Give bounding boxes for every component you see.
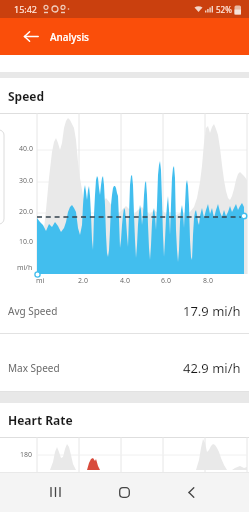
staticText: Speed <box>8 88 45 104</box>
staticText: 10.0 <box>19 237 33 247</box>
staticText: 17.9 mi/h <box>183 302 241 320</box>
staticText: mi <box>36 276 45 286</box>
staticText: 2.0 <box>78 276 88 286</box>
staticText: 8.0 <box>203 276 213 286</box>
staticText: 6.0 <box>161 276 171 286</box>
staticText: Avg Speed <box>8 304 58 318</box>
staticText: Max Speed <box>8 361 60 375</box>
button[interactable]: Max Speed <box>0 334 249 391</box>
staticText: Heart Rate <box>8 412 73 428</box>
button[interactable]: Avg Speed <box>0 288 249 333</box>
staticText: 15:42 <box>14 3 38 15</box>
staticText: 20.0 <box>19 207 33 217</box>
button[interactable] <box>167 472 215 512</box>
staticText: mi/h <box>17 263 33 273</box>
staticText: 30.0 <box>19 176 33 186</box>
staticText: Analysis <box>50 30 89 44</box>
staticText: 180 <box>20 450 33 460</box>
button[interactable] <box>15 18 47 55</box>
button[interactable] <box>100 472 148 512</box>
button[interactable] <box>31 472 79 512</box>
staticText: 40.0 <box>19 144 33 154</box>
staticText: 4.0 <box>120 276 130 286</box>
staticText: 52% <box>216 4 232 15</box>
staticText: 42.9 mi/h <box>183 359 241 377</box>
